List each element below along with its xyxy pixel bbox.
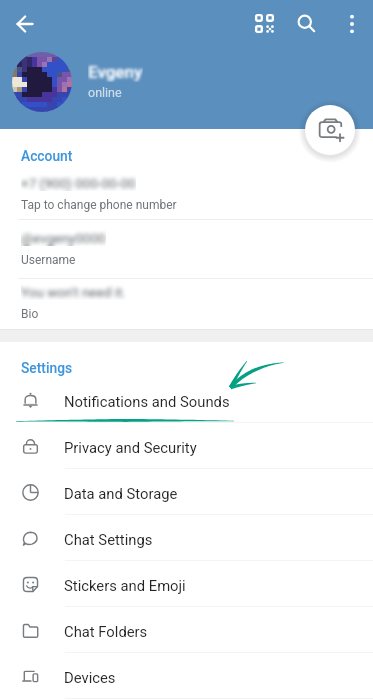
button[interactable]: Back	[9, 8, 41, 40]
staticText: Devices	[64, 669, 116, 686]
staticText: Notifications and Sounds	[64, 393, 230, 410]
staticText: online	[88, 85, 122, 100]
staticText: +7 (900) 000-00-00	[21, 175, 136, 191]
staticText: Account	[21, 148, 73, 164]
staticText: Privacy and Security	[64, 439, 197, 456]
staticText: Username	[21, 253, 76, 267]
staticText: Tap to change phone number	[21, 198, 177, 212]
staticText: Bio	[21, 307, 39, 321]
staticText: Stickers and Emoji	[64, 577, 186, 594]
button[interactable]: Notifications and Sounds	[0, 377, 373, 423]
staticText: Evgeny	[88, 62, 143, 82]
button[interactable]: Stickers and Emoji	[0, 561, 373, 607]
staticText: Chat Settings	[64, 531, 153, 548]
button[interactable]: Devices	[0, 653, 373, 699]
button[interactable]: Profile photo	[12, 52, 72, 112]
staticText: You won't need it.	[21, 284, 126, 300]
staticText: Chat Folders	[64, 623, 148, 640]
button[interactable]: @evgeny0000	[0, 230, 373, 267]
button[interactable]: Privacy and Security	[0, 423, 373, 469]
button[interactable]: Scan QR code	[249, 8, 280, 39]
button[interactable]: Chat Folders	[0, 607, 373, 653]
button[interactable]: Data and Storage	[0, 469, 373, 515]
staticText: Data and Storage	[64, 485, 178, 502]
button[interactable]: More options	[336, 8, 368, 40]
button[interactable]: You won't need it.	[0, 284, 373, 321]
button[interactable]: +7 (900) 000-00-00	[0, 175, 373, 212]
button[interactable]: Chat Settings	[0, 515, 373, 561]
button[interactable]: Set profile photo	[305, 105, 355, 155]
staticText: Settings	[21, 360, 73, 376]
staticText: @evgeny0000	[21, 230, 106, 246]
button[interactable]: Search	[292, 9, 322, 39]
